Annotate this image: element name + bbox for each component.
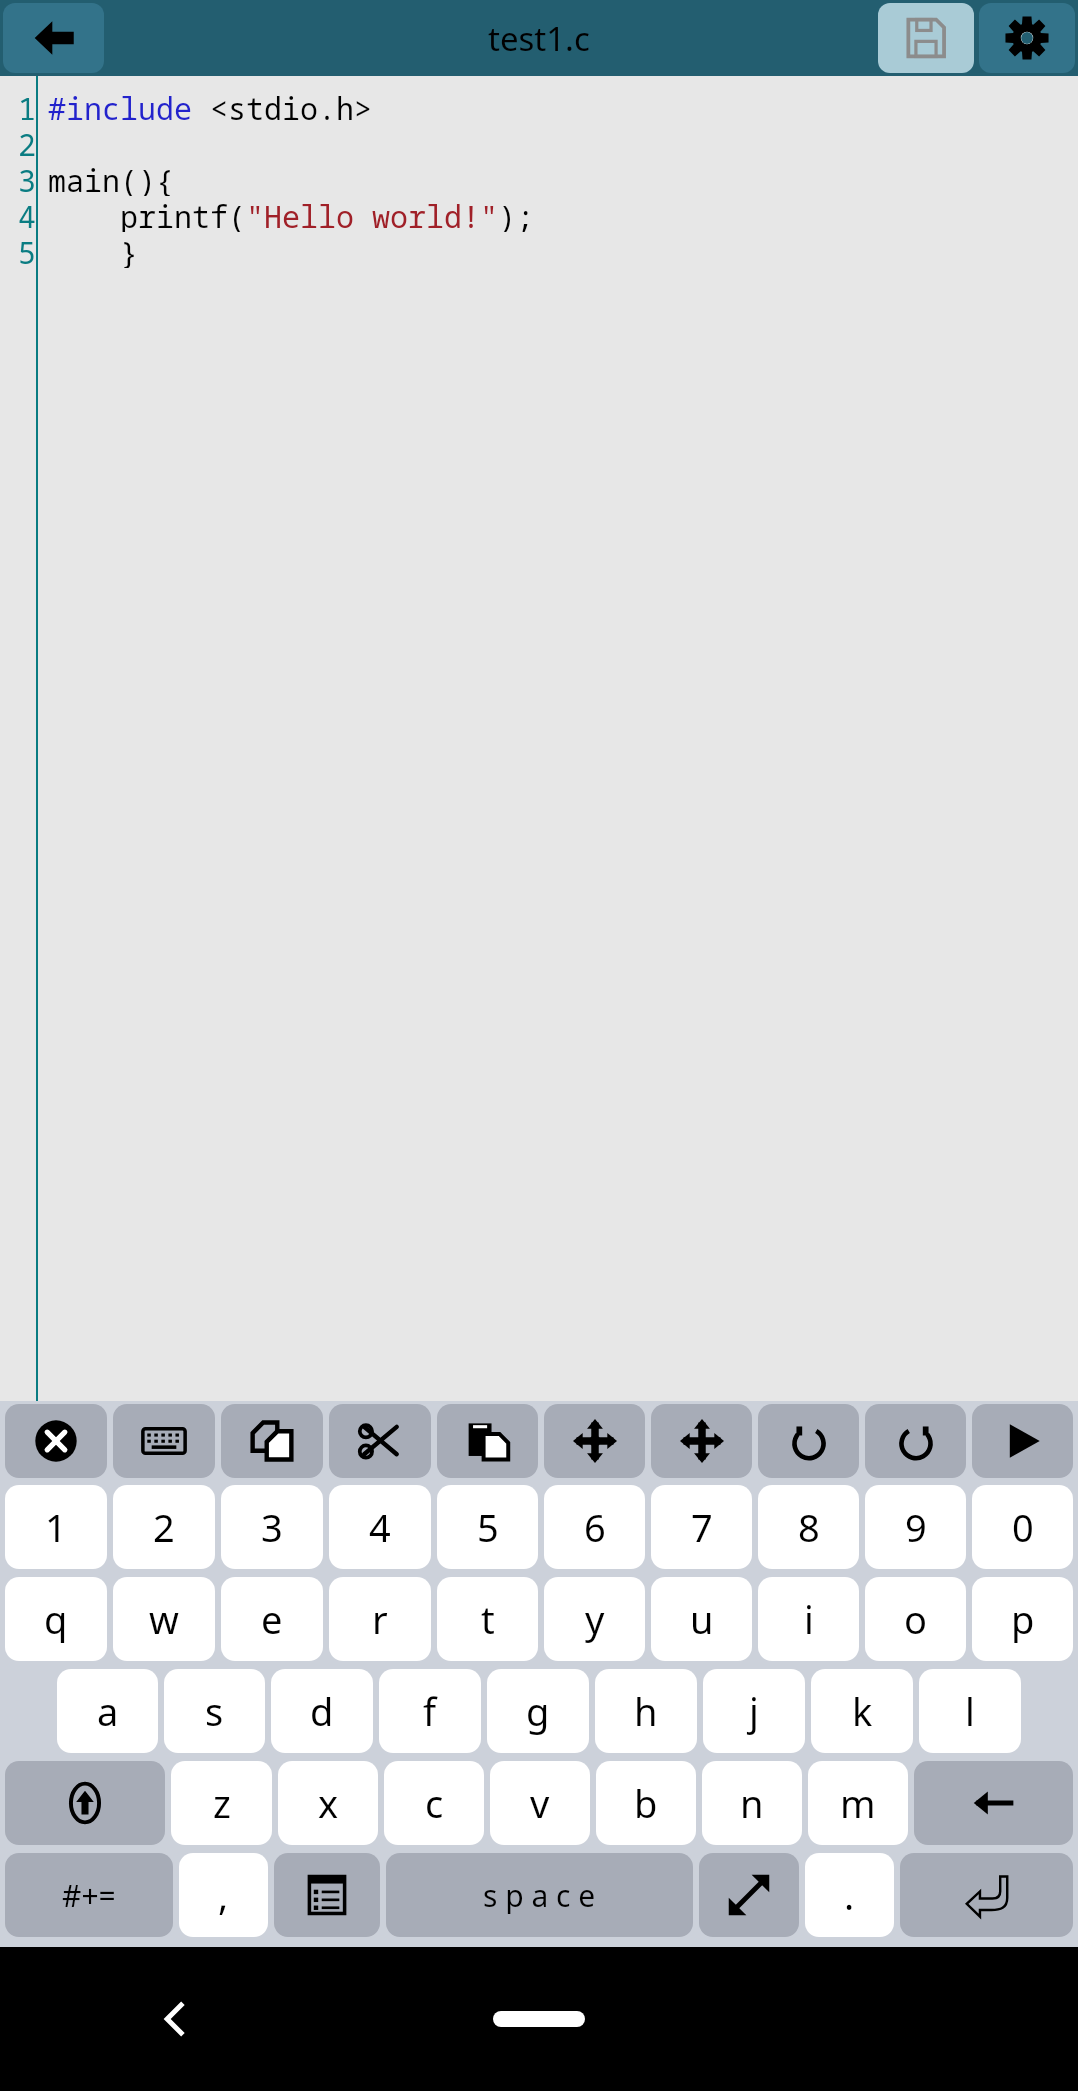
staticText: x [318, 1777, 339, 1829]
button[interactable]: k [811, 1669, 913, 1753]
button[interactable]: t [437, 1577, 538, 1661]
staticText: z [213, 1777, 231, 1829]
button[interactable]: Move cursor [651, 1404, 752, 1478]
button[interactable]: 7 [651, 1485, 752, 1569]
button[interactable]: 2 [113, 1485, 215, 1569]
button[interactable]: Undo [758, 1404, 859, 1478]
staticText: f [423, 1685, 437, 1737]
button[interactable]: j [703, 1669, 805, 1753]
button[interactable]: Back [140, 1984, 210, 2054]
staticText: printf("Hello world!"); [48, 196, 534, 232]
staticText: m [840, 1777, 876, 1829]
staticText: u [690, 1593, 714, 1645]
button[interactable]: Back [3, 3, 104, 73]
button[interactable]: Keyboard [113, 1404, 215, 1478]
staticText: 6 [584, 1501, 606, 1553]
staticText: 5 [18, 232, 36, 268]
button[interactable]: 6 [544, 1485, 645, 1569]
staticText: main(){ [48, 160, 174, 196]
button[interactable]: 0 [972, 1485, 1073, 1569]
button[interactable]: p [972, 1577, 1073, 1661]
button[interactable]: r [329, 1577, 431, 1661]
staticText: . [844, 1869, 855, 1921]
staticText: , [218, 1869, 229, 1921]
button[interactable]: w [113, 1577, 215, 1661]
button[interactable]: q [5, 1577, 107, 1661]
button[interactable]: s [164, 1669, 265, 1753]
staticText: #+= [62, 1875, 116, 1916]
button[interactable]: z [171, 1761, 272, 1845]
button[interactable]: 1 [5, 1485, 107, 1569]
staticText: #include <stdio.h> [48, 88, 372, 124]
button[interactable]: e [221, 1577, 323, 1661]
staticText: n [740, 1777, 764, 1829]
staticText: v [530, 1777, 550, 1829]
button[interactable]: i [758, 1577, 859, 1661]
button[interactable]: n [702, 1761, 802, 1845]
button[interactable]: Backspace [914, 1761, 1073, 1845]
staticText: t [481, 1593, 495, 1645]
button[interactable]: Save [878, 3, 974, 73]
button[interactable]: b [596, 1761, 696, 1845]
button[interactable]: x [278, 1761, 378, 1845]
staticText: s [205, 1685, 224, 1737]
button[interactable]: Cut [329, 1404, 431, 1478]
button[interactable]: Home [493, 2011, 585, 2027]
staticText: k [852, 1685, 873, 1737]
staticText: 5 [477, 1501, 499, 1553]
staticText: o [904, 1593, 927, 1645]
staticText: 7 [691, 1501, 713, 1553]
staticText: h [634, 1685, 658, 1737]
button[interactable]: 9 [865, 1485, 966, 1569]
button[interactable]: l [919, 1669, 1021, 1753]
button[interactable]: v [490, 1761, 590, 1845]
staticText: } [48, 232, 138, 268]
button[interactable]: f [379, 1669, 481, 1753]
button[interactable]: Redo [865, 1404, 966, 1478]
button[interactable]: #+= [5, 1853, 173, 1937]
button[interactable]: y [544, 1577, 645, 1661]
staticText: 1 [18, 88, 36, 124]
button[interactable]: 3 [221, 1485, 323, 1569]
button[interactable]: Move selection [544, 1404, 645, 1478]
staticText: 8 [798, 1501, 820, 1553]
button[interactable]: . [805, 1853, 894, 1937]
button[interactable]: Shift [5, 1761, 165, 1845]
button[interactable]: Close [5, 1404, 107, 1478]
button[interactable]: a [57, 1669, 158, 1753]
staticText: 2 [18, 124, 36, 160]
button[interactable]: Enter [900, 1853, 1073, 1937]
button[interactable]: 4 [329, 1485, 431, 1569]
staticText: d [310, 1685, 334, 1737]
button[interactable]: 8 [758, 1485, 859, 1569]
button[interactable]: Paste [437, 1404, 538, 1478]
button[interactable]: c [384, 1761, 484, 1845]
staticText: 0 [1012, 1501, 1034, 1553]
staticText: 9 [905, 1501, 927, 1553]
button[interactable]: 5 [437, 1485, 538, 1569]
button[interactable]: m [808, 1761, 908, 1845]
staticText: a [97, 1685, 119, 1737]
staticText: l [965, 1685, 975, 1737]
button[interactable]: u [651, 1577, 752, 1661]
staticText: i [804, 1593, 814, 1645]
staticText: 2 [153, 1501, 175, 1553]
button[interactable]: Resize [699, 1853, 799, 1937]
button[interactable]: Copy [221, 1404, 323, 1478]
staticText: w [149, 1593, 179, 1645]
staticText: c [425, 1777, 444, 1829]
button[interactable]: s p a c e [386, 1853, 693, 1937]
button[interactable]: g [487, 1669, 589, 1753]
staticText: e [261, 1593, 283, 1645]
button[interactable]: o [865, 1577, 966, 1661]
button[interactable]: , [179, 1853, 268, 1937]
button[interactable]: Settings [979, 3, 1075, 73]
button[interactable]: Run [972, 1404, 1073, 1478]
button[interactable]: h [595, 1669, 697, 1753]
staticText: test1.c [488, 16, 590, 61]
staticText: g [526, 1685, 550, 1737]
staticText: s p a c e [483, 1875, 596, 1916]
button[interactable]: d [271, 1669, 373, 1753]
button[interactable]: Symbols [274, 1853, 380, 1937]
staticText: 4 [18, 196, 36, 232]
